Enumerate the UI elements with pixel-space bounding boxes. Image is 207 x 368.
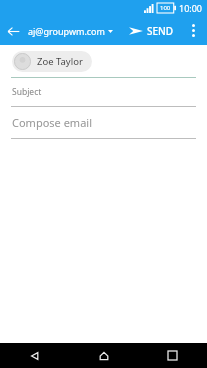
button[interactable]: SEND	[125, 19, 178, 43]
staticText: SEND	[147, 24, 174, 38]
staticText: Subject	[12, 86, 42, 98]
button[interactable]: Recent apps	[138, 343, 207, 368]
button[interactable]: Subject	[0, 78, 207, 106]
button[interactable]: Compose email	[0, 107, 207, 138]
staticText: 10:00	[179, 2, 203, 14]
button[interactable]: aj@groupwm.com	[26, 21, 115, 41]
staticText: Compose email	[12, 115, 92, 130]
staticText: aj@groupwm.com	[28, 25, 105, 37]
button[interactable]: Zoe Taylor	[0, 46, 207, 77]
button[interactable]: Home	[69, 343, 138, 368]
button[interactable]: Back	[0, 343, 69, 368]
staticText: 100	[160, 4, 171, 12]
button[interactable]: Back	[0, 18, 26, 44]
staticText: Zoe Taylor	[37, 55, 83, 68]
button[interactable]: More options	[182, 16, 204, 45]
